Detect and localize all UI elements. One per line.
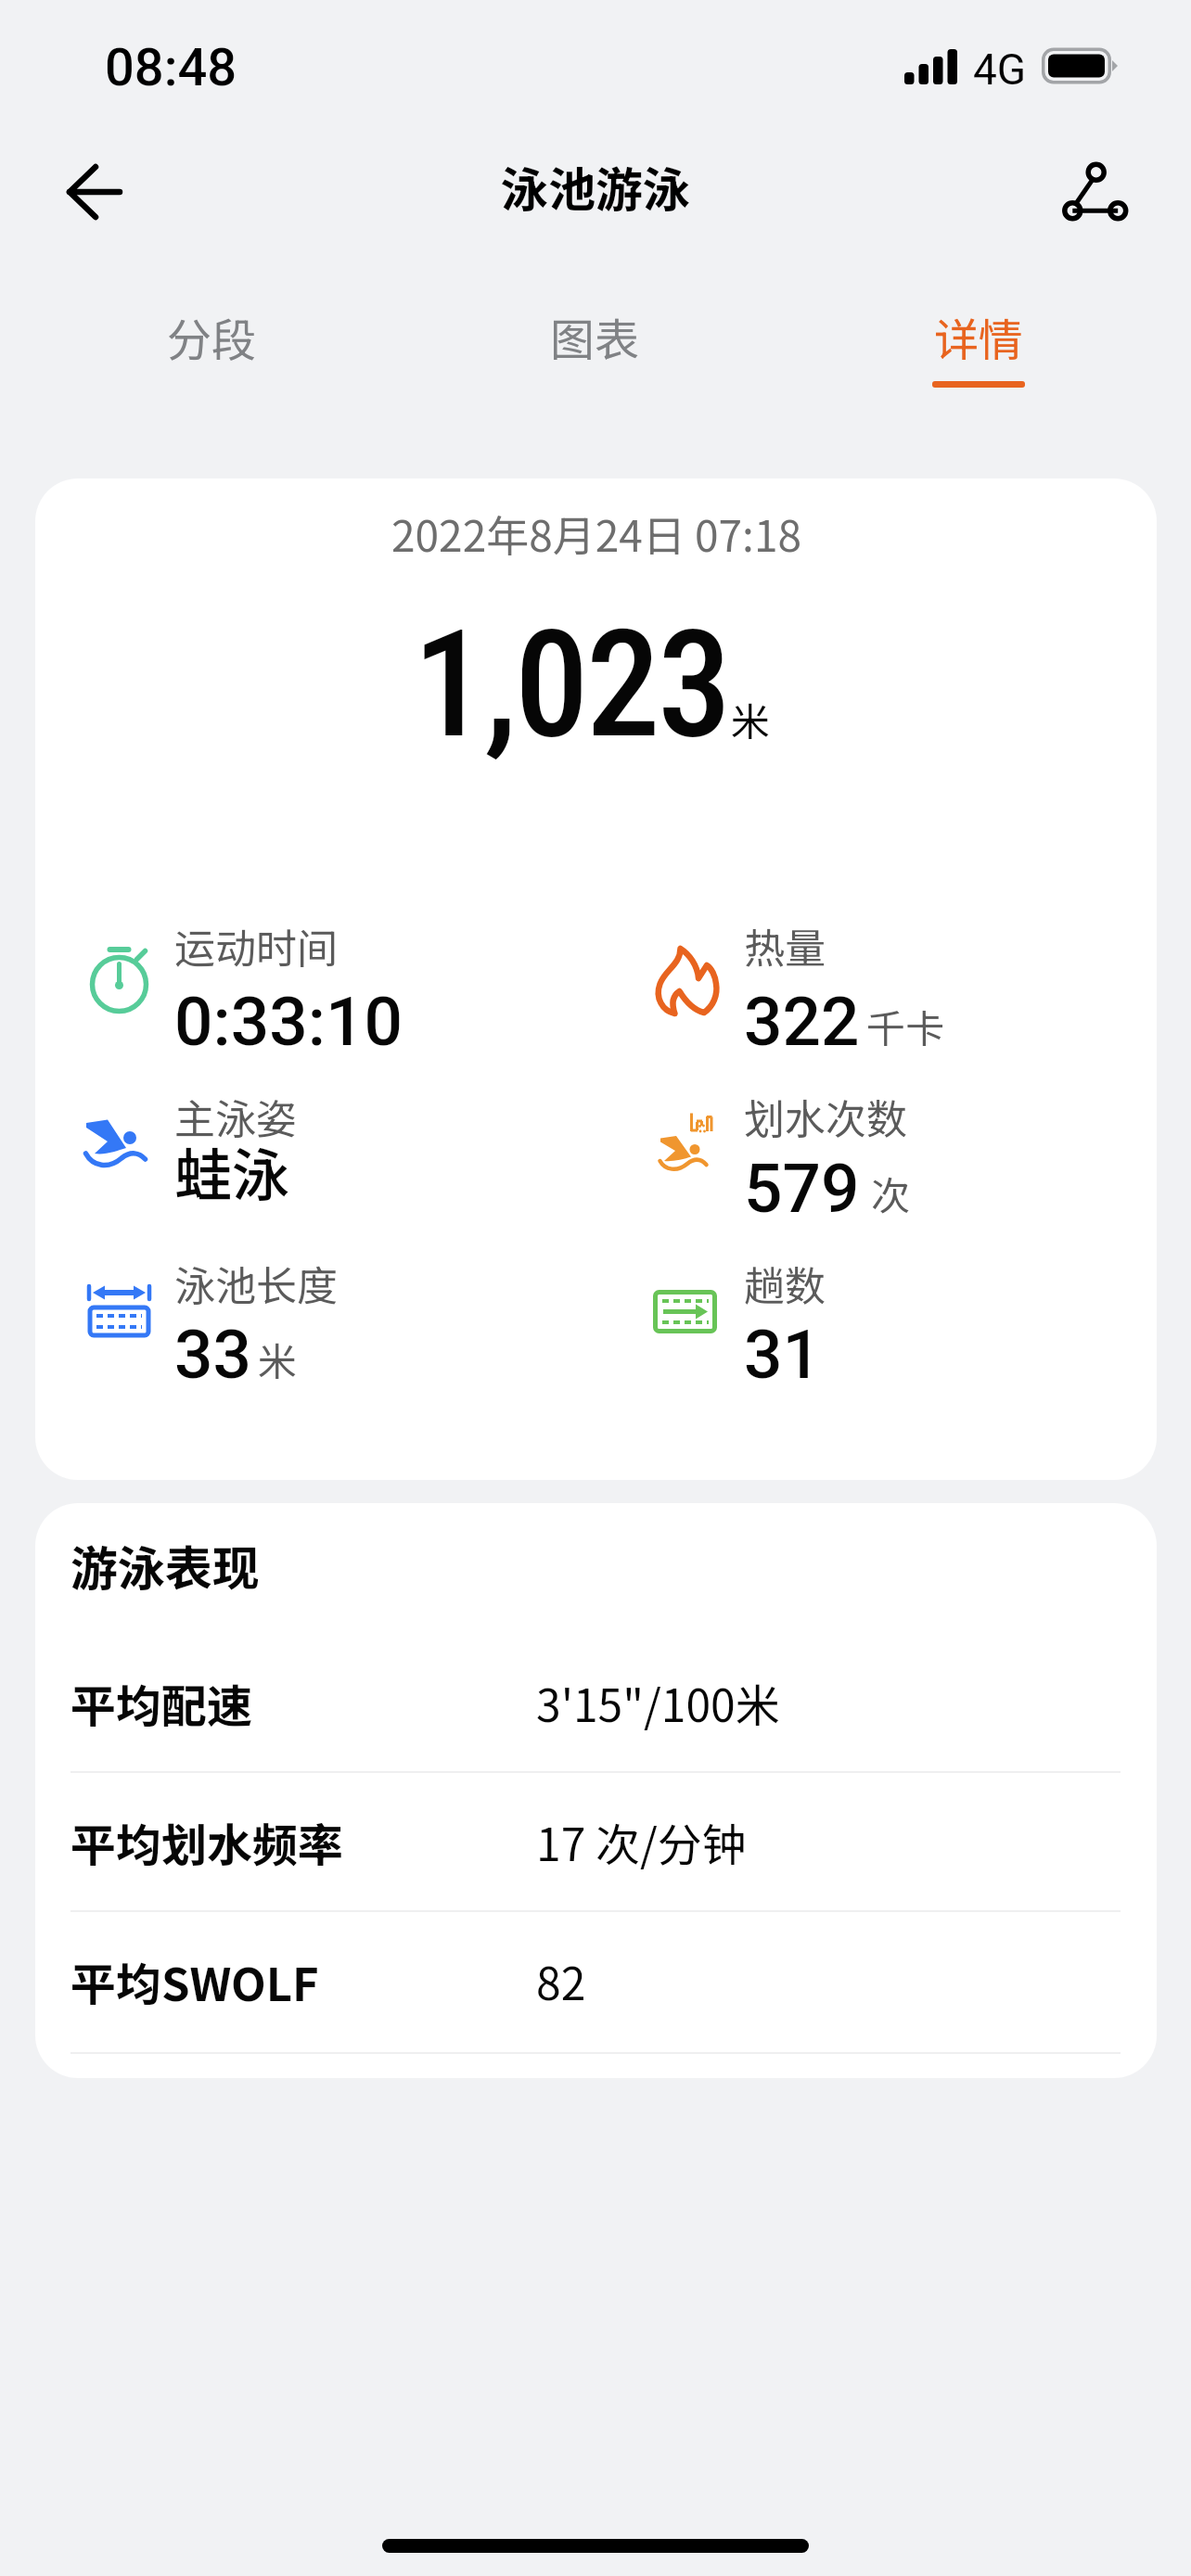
staticText: 3'15"/100米 [536, 1670, 780, 1735]
staticText: 579 [744, 1149, 860, 1229]
staticText: 82 [536, 1948, 586, 2013]
staticText: 划水次数 [744, 1087, 907, 1146]
staticText: 1,023 [413, 598, 729, 772]
staticText: 趟数 [744, 1254, 826, 1313]
staticText: 322 [744, 982, 860, 1062]
staticText: 33 [174, 1315, 251, 1395]
staticText: 泳池长度 [174, 1254, 338, 1313]
staticText: 详情 [934, 304, 1024, 369]
staticText: 游泳表现 [70, 1531, 261, 1600]
staticText: 图表 [550, 304, 640, 369]
staticText: 米 [731, 691, 771, 747]
staticText: 运动时间 [174, 916, 338, 976]
staticText: 平均SWOLF [70, 1948, 536, 2014]
button[interactable]: 分段 [109, 287, 314, 389]
staticText: 2022年8月24日 07:18 [391, 503, 801, 565]
button[interactable]: 平均SWOLF [35, 1911, 1157, 2050]
staticText: 热量 [744, 916, 826, 976]
staticText: 平均划水频率 [70, 1809, 536, 1875]
staticText: 次 [871, 1165, 911, 1221]
staticText: 平均配速 [70, 1670, 536, 1736]
staticText: 米 [258, 1331, 298, 1387]
staticText: 17 次/分钟 [536, 1809, 747, 1874]
button[interactable]: Share [1031, 127, 1161, 257]
staticText: 分段 [167, 304, 257, 369]
button[interactable]: 平均配速 [35, 1633, 1157, 1772]
button[interactable]: 图表 [493, 287, 697, 389]
staticText: 0:33:10 [174, 982, 403, 1062]
staticText: 千卡 [866, 998, 945, 1054]
button[interactable]: 平均划水频率 [35, 1772, 1157, 1911]
staticText: 08:48 [105, 37, 237, 98]
button[interactable]: Back [30, 127, 160, 257]
staticText: 蛙泳 [174, 1129, 290, 1213]
button[interactable]: 详情 [877, 287, 1081, 389]
staticText: 4G [973, 45, 1027, 95]
staticText: 31 [744, 1315, 821, 1395]
staticText: 主泳姿 [174, 1087, 297, 1146]
staticText: 泳池游泳 [501, 152, 691, 221]
